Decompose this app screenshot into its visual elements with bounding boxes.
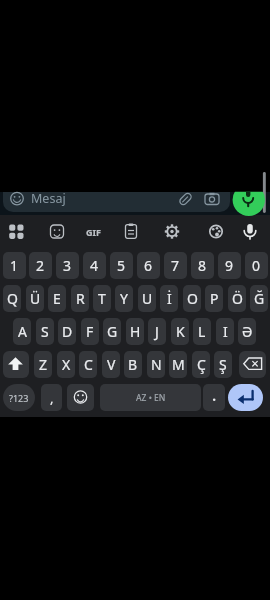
staticText: F bbox=[86, 322, 94, 341]
staticText: Z bbox=[39, 355, 48, 374]
button[interactable]: C bbox=[79, 351, 97, 378]
button[interactable]: X bbox=[57, 351, 75, 378]
button[interactable]: M bbox=[169, 351, 187, 378]
button[interactable]: 8 bbox=[191, 252, 214, 279]
staticText: V bbox=[107, 355, 116, 374]
button[interactable]: ?123 bbox=[3, 384, 35, 411]
staticText: S bbox=[41, 322, 49, 341]
staticText: Ə bbox=[242, 322, 253, 341]
button[interactable] bbox=[239, 351, 266, 378]
button[interactable]: V bbox=[102, 351, 120, 378]
staticText: X bbox=[62, 355, 71, 374]
staticText: AZ • EN bbox=[136, 392, 166, 404]
button[interactable]: , bbox=[41, 384, 62, 411]
button[interactable]: İ bbox=[160, 285, 178, 312]
staticText: G bbox=[107, 322, 118, 341]
staticText: 7 bbox=[171, 256, 180, 275]
staticText: 4 bbox=[90, 256, 99, 275]
button[interactable]: 1 bbox=[3, 252, 26, 279]
button[interactable] bbox=[67, 384, 94, 411]
button[interactable]: 5 bbox=[110, 252, 133, 279]
button[interactable]: I bbox=[216, 318, 234, 345]
staticText: 9 bbox=[225, 256, 234, 275]
button[interactable]: K bbox=[171, 318, 189, 345]
staticText: Ğ bbox=[254, 289, 265, 308]
button[interactable]: L bbox=[193, 318, 211, 345]
staticText: H bbox=[130, 322, 141, 341]
button[interactable] bbox=[203, 384, 225, 411]
button[interactable]: 6 bbox=[137, 252, 160, 279]
button[interactable]: S bbox=[36, 318, 54, 345]
staticText: , bbox=[50, 389, 54, 407]
staticText: R bbox=[76, 289, 85, 308]
staticText: 3 bbox=[63, 256, 72, 275]
button[interactable]: GIF bbox=[82, 224, 105, 239]
button[interactable]: Ç bbox=[192, 351, 210, 378]
button[interactable]: Ş bbox=[214, 351, 232, 378]
staticText: P bbox=[210, 289, 219, 308]
staticText: Ü bbox=[30, 289, 41, 308]
staticText: U bbox=[142, 289, 153, 308]
staticText: D bbox=[62, 322, 73, 341]
button[interactable]: 2 bbox=[29, 252, 52, 279]
button[interactable] bbox=[3, 192, 230, 212]
button[interactable]: B bbox=[124, 351, 142, 378]
button[interactable]: 7 bbox=[164, 252, 187, 279]
staticText: B bbox=[128, 355, 138, 374]
staticText: İ bbox=[167, 289, 172, 308]
staticText: L bbox=[198, 322, 206, 341]
button[interactable] bbox=[228, 384, 263, 411]
staticText: N bbox=[151, 355, 162, 374]
staticText: ?123 bbox=[9, 392, 29, 404]
staticText: GIF bbox=[86, 226, 101, 238]
staticText: 8 bbox=[198, 256, 207, 275]
button[interactable]: 9 bbox=[218, 252, 241, 279]
staticText: Y bbox=[120, 289, 128, 308]
button[interactable]: 3 bbox=[56, 252, 79, 279]
staticText: Ş bbox=[219, 355, 227, 374]
staticText: T bbox=[98, 289, 106, 308]
button[interactable]: Z bbox=[34, 351, 52, 378]
staticText: 0 bbox=[252, 256, 261, 275]
staticText: 1 bbox=[10, 256, 19, 275]
button[interactable]: G bbox=[103, 318, 121, 345]
staticText: J bbox=[155, 322, 159, 341]
button[interactable]: Mesaj bbox=[31, 190, 91, 207]
button[interactable] bbox=[100, 384, 201, 411]
button[interactable]: Ö bbox=[228, 285, 246, 312]
button[interactable]: U bbox=[138, 285, 156, 312]
button[interactable]: R bbox=[71, 285, 89, 312]
staticText: E bbox=[53, 289, 61, 308]
button[interactable]: E bbox=[48, 285, 66, 312]
staticText: Mesaj bbox=[31, 190, 66, 207]
staticText: A bbox=[18, 322, 27, 341]
staticText: Ö bbox=[232, 289, 243, 308]
staticText: Q bbox=[7, 289, 18, 308]
staticText: 2 bbox=[36, 256, 45, 275]
staticText: I bbox=[223, 322, 228, 341]
button[interactable]: Ü bbox=[26, 285, 44, 312]
staticText: Ç bbox=[197, 355, 206, 374]
button[interactable]: N bbox=[147, 351, 165, 378]
staticText: 5 bbox=[117, 256, 126, 275]
button[interactable]: D bbox=[58, 318, 76, 345]
staticText: 6 bbox=[144, 256, 153, 275]
button[interactable]: Ə bbox=[238, 318, 256, 345]
button[interactable]: F bbox=[81, 318, 99, 345]
staticText: C bbox=[84, 355, 93, 374]
button[interactable]: 4 bbox=[83, 252, 106, 279]
staticText: K bbox=[176, 322, 185, 341]
button[interactable]: Ğ bbox=[250, 285, 268, 312]
button[interactable]: 0 bbox=[245, 252, 268, 279]
button[interactable]: P bbox=[205, 285, 223, 312]
button[interactable]: T bbox=[93, 285, 111, 312]
button[interactable]: O bbox=[183, 285, 201, 312]
staticText: O bbox=[187, 289, 198, 308]
button[interactable]: Y bbox=[115, 285, 133, 312]
button[interactable]: H bbox=[126, 318, 144, 345]
button[interactable]: J bbox=[148, 318, 166, 345]
button[interactable]: A bbox=[13, 318, 31, 345]
button[interactable] bbox=[3, 351, 29, 378]
button[interactable]: Q bbox=[3, 285, 21, 312]
staticText: M bbox=[172, 355, 185, 374]
